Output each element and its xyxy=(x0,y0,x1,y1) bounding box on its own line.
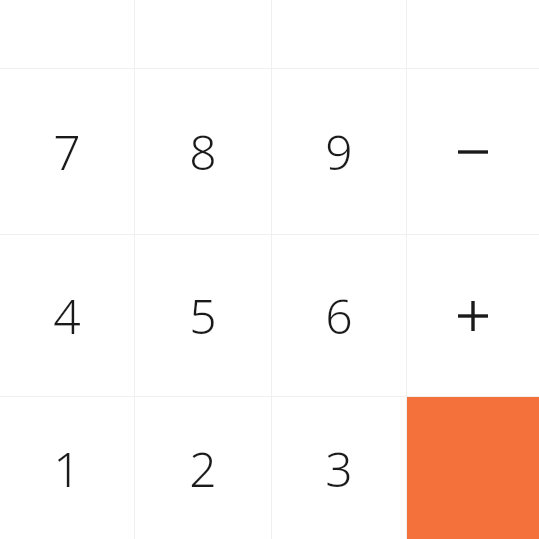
button[interactable]: 6 xyxy=(272,235,406,396)
button[interactable]: 2 xyxy=(135,397,271,539)
button[interactable]: Plus xyxy=(407,235,539,396)
button[interactable]: 4 xyxy=(0,235,134,396)
button[interactable]: 3 xyxy=(272,397,406,539)
staticText: 7 xyxy=(53,119,81,184)
button[interactable]: 9 xyxy=(272,69,406,234)
staticText: 6 xyxy=(325,283,353,348)
staticText: 9 xyxy=(325,119,353,184)
staticText: 3 xyxy=(325,436,353,501)
button[interactable]: 8 xyxy=(135,69,271,234)
staticText: 5 xyxy=(189,283,217,348)
staticText: 8 xyxy=(189,119,217,184)
button[interactable]: 5 xyxy=(135,235,271,396)
staticText: 1 xyxy=(53,436,81,501)
staticText: 2 xyxy=(189,436,217,501)
button[interactable]: 7 xyxy=(0,69,134,234)
staticText: 4 xyxy=(53,283,81,348)
button[interactable]: 1 xyxy=(0,397,134,539)
button[interactable]: Minus xyxy=(407,69,539,234)
